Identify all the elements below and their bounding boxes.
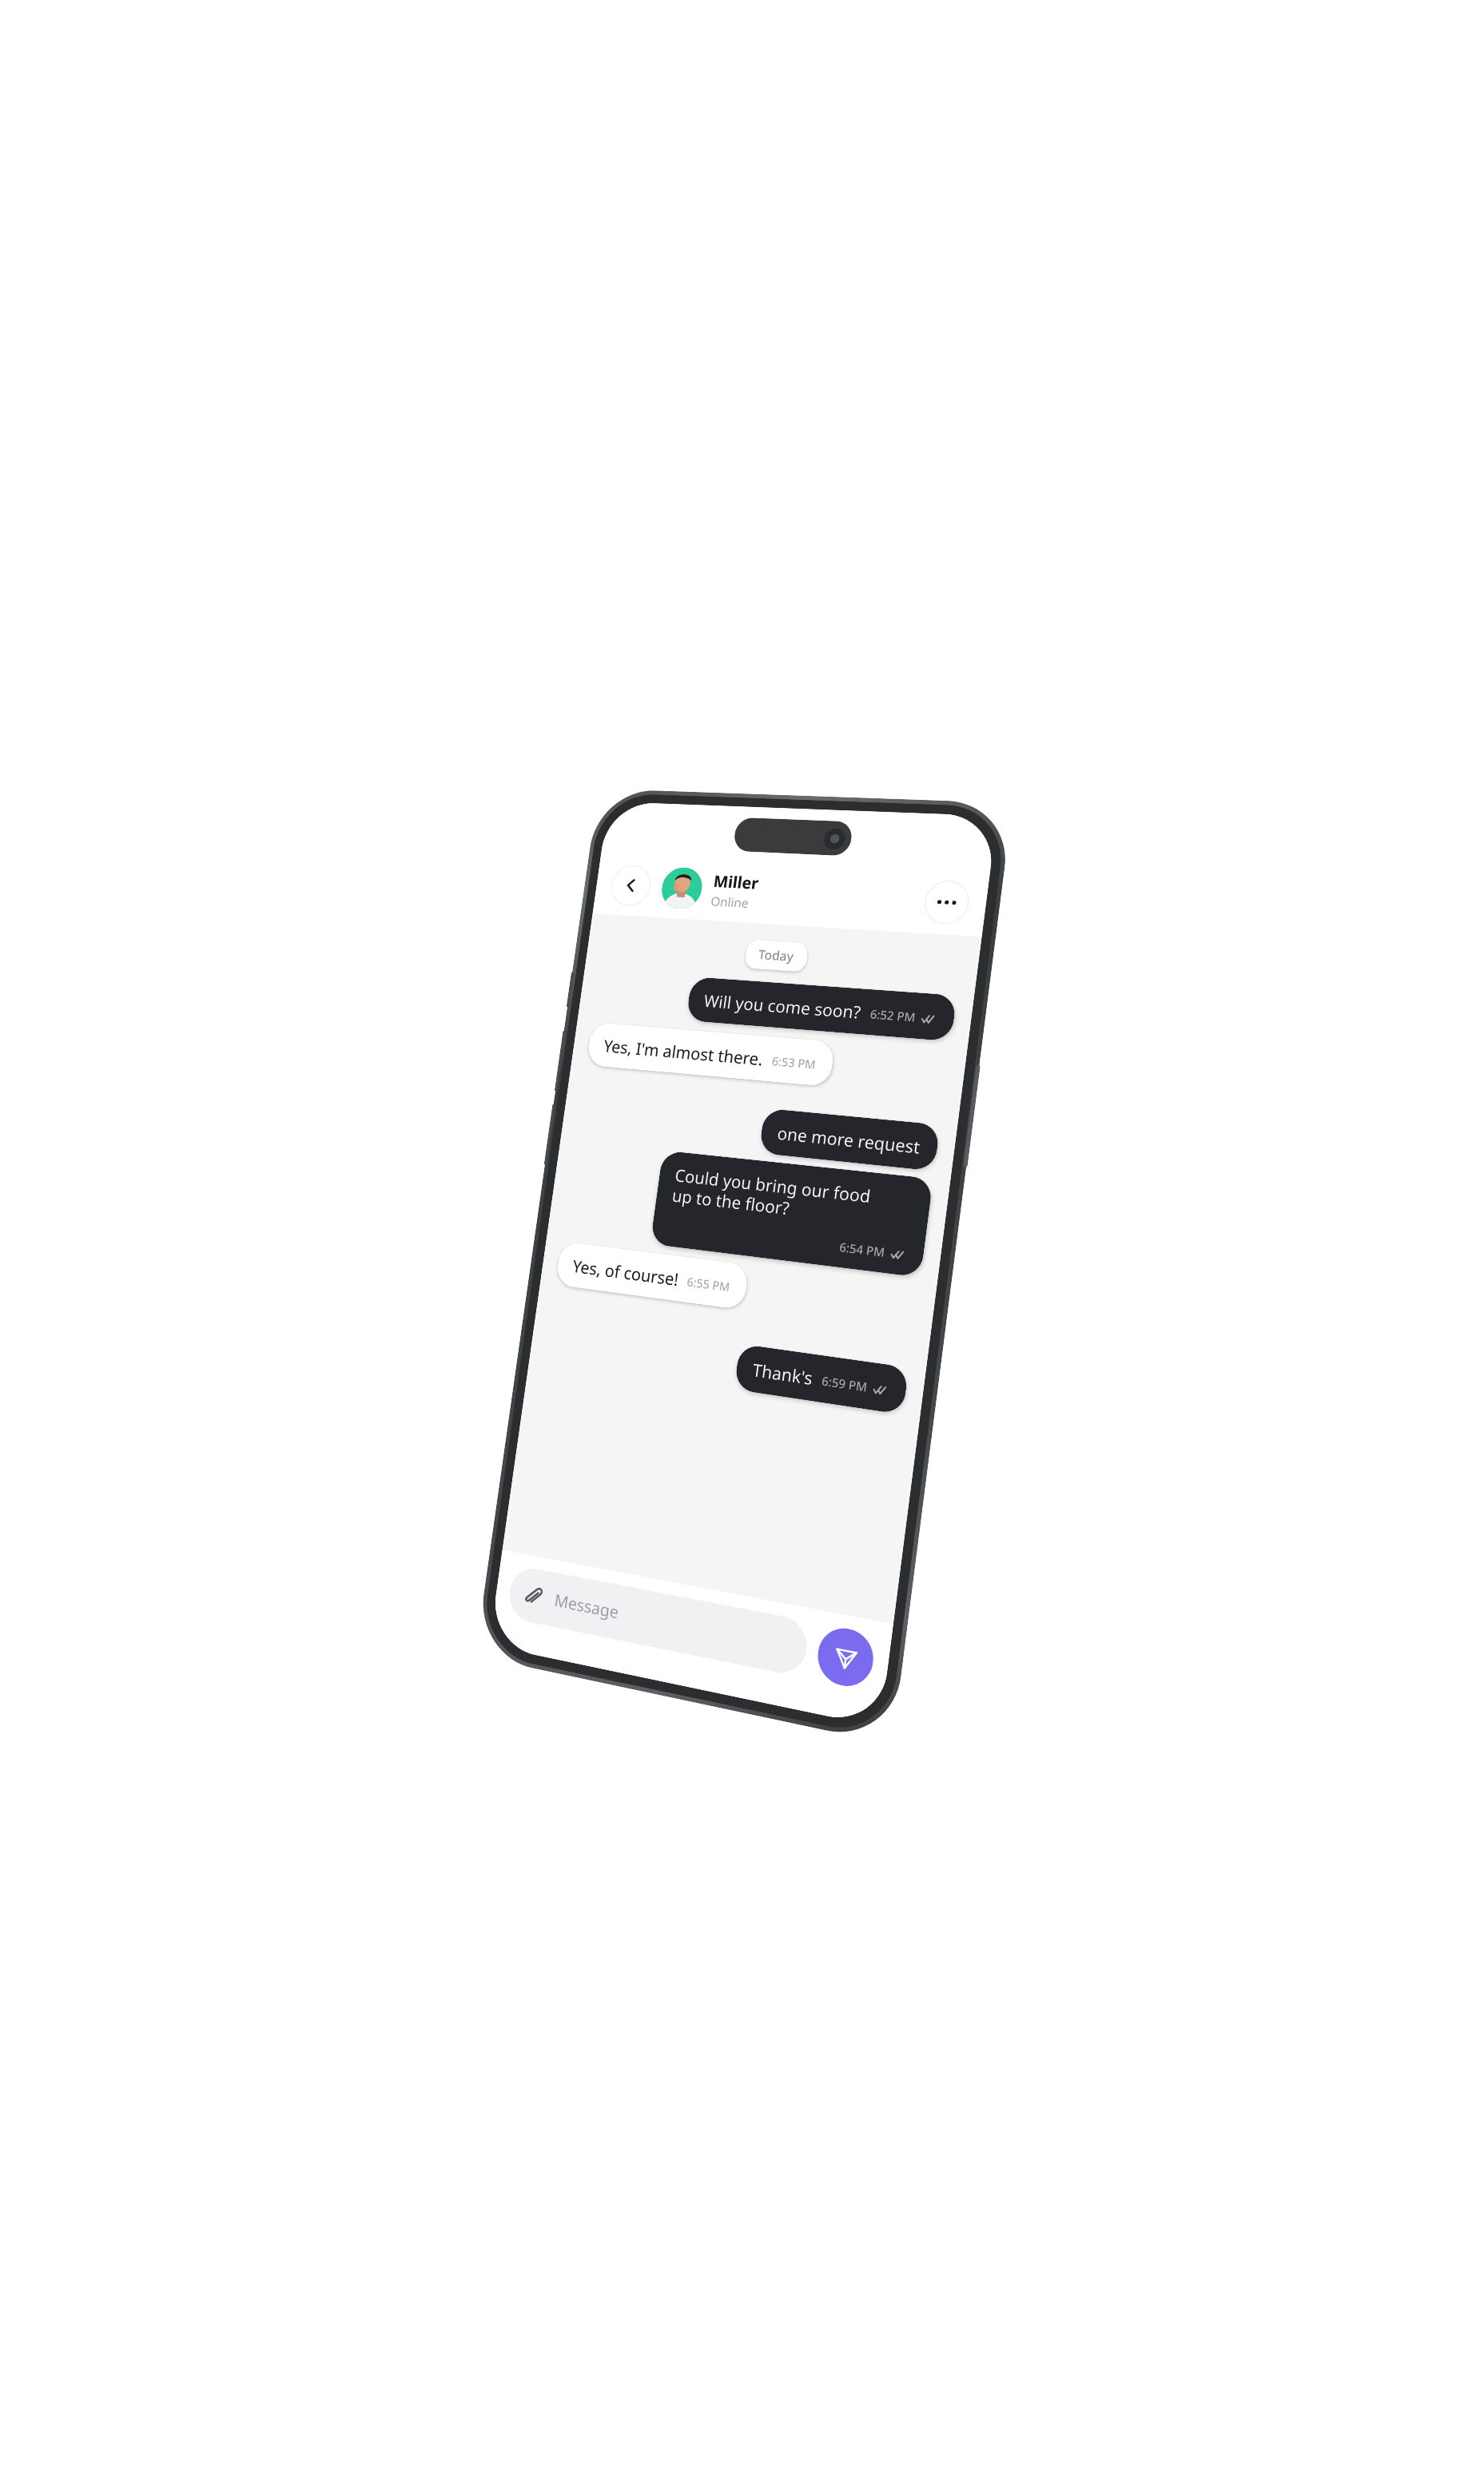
staticText: 6:52 PM — [869, 1006, 917, 1026]
staticText: 6:59 PM — [821, 1373, 869, 1396]
button[interactable]: Back — [609, 864, 654, 907]
button[interactable]: Thank's — [734, 1344, 909, 1415]
button[interactable]: Yes, I'm almost there. — [586, 1022, 836, 1087]
staticText: Yes, I'm almost there. — [602, 1034, 765, 1070]
staticText: Today — [757, 946, 795, 965]
button[interactable]: Could you bring our food up to the floor… — [650, 1150, 933, 1278]
staticText: Could you bring our food up to the floor… — [671, 1163, 873, 1229]
staticText: Miller — [712, 870, 761, 894]
staticText: 6:55 PM — [686, 1274, 731, 1296]
staticText: 6:54 PM — [838, 1239, 886, 1261]
button[interactable]: Message — [506, 1564, 810, 1678]
staticText: Message — [553, 1588, 620, 1624]
staticText: Will you come soon? — [703, 989, 863, 1023]
button[interactable]: Will you come soon? — [686, 977, 957, 1041]
button[interactable]: Send — [814, 1624, 877, 1691]
staticText: Thank's — [751, 1357, 814, 1389]
button[interactable]: More options — [922, 880, 972, 925]
button[interactable]: one more request — [759, 1108, 940, 1171]
staticText: Yes, of course! — [571, 1254, 680, 1290]
staticText: one more request — [776, 1121, 922, 1158]
button[interactable]: Miller — [659, 866, 928, 923]
staticText: Online — [710, 893, 750, 912]
button[interactable]: Yes, of course! — [555, 1241, 750, 1310]
staticText: 6:53 PM — [771, 1053, 817, 1073]
